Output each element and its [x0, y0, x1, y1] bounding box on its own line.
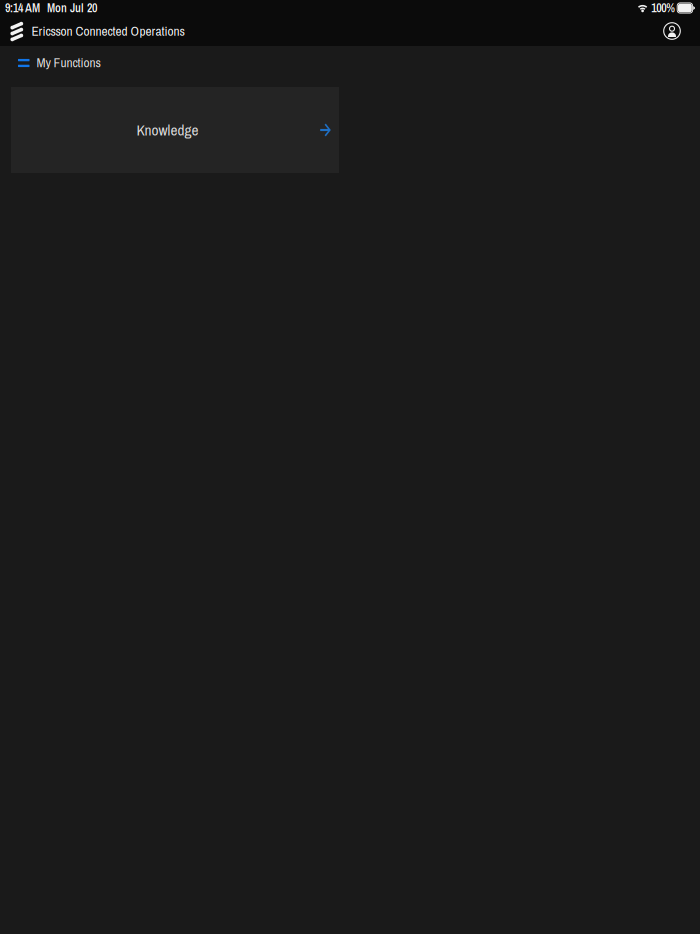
- staticText: Ericsson Connected Operations: [32, 22, 185, 40]
- staticText: 9:14 AM: [5, 0, 40, 16]
- staticText: Knowledge: [136, 120, 198, 140]
- staticText: 100%: [651, 0, 675, 16]
- button[interactable]: Knowledge: [11, 87, 339, 173]
- button[interactable]: Account: [658, 17, 686, 45]
- staticText: Mon Jul 20: [47, 0, 97, 16]
- staticText: My Functions: [36, 53, 100, 71]
- button[interactable]: My Functions: [0, 46, 700, 79]
